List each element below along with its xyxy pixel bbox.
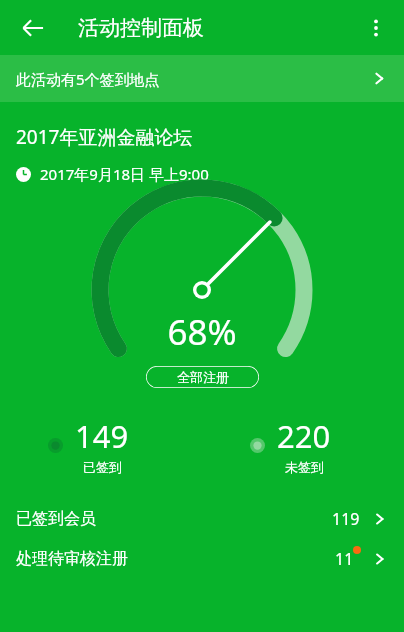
- staticText: 2017年亚洲金融论坛: [16, 124, 193, 150]
- button[interactable]: 处理待审核注册: [0, 539, 404, 579]
- staticText: 活动控制面板: [78, 15, 204, 41]
- staticText: 处理待审核注册: [16, 549, 128, 569]
- staticText: 149: [75, 415, 129, 457]
- staticText: 119: [332, 508, 360, 530]
- staticText: 此活动有5个签到地点: [16, 69, 160, 89]
- staticText: 2017年9月18日 早上9:00: [40, 164, 209, 184]
- staticText: 全部注册: [177, 369, 229, 385]
- button[interactable]: 220: [202, 409, 404, 481]
- button[interactable]: 已签到会员: [0, 499, 404, 539]
- staticText: 已签到会员: [16, 509, 96, 529]
- button[interactable]: 149: [0, 409, 202, 481]
- button[interactable]: 此活动有5个签到地点: [0, 55, 404, 102]
- button[interactable]: 全部注册: [146, 366, 259, 388]
- staticText: 11: [335, 548, 354, 570]
- staticText: 已签到: [83, 459, 122, 475]
- button[interactable]: Back: [12, 7, 54, 49]
- staticText: 未签到: [285, 459, 324, 475]
- staticText: 68%: [167, 308, 237, 356]
- staticText: 220: [277, 415, 331, 457]
- button[interactable]: More options: [354, 6, 398, 50]
